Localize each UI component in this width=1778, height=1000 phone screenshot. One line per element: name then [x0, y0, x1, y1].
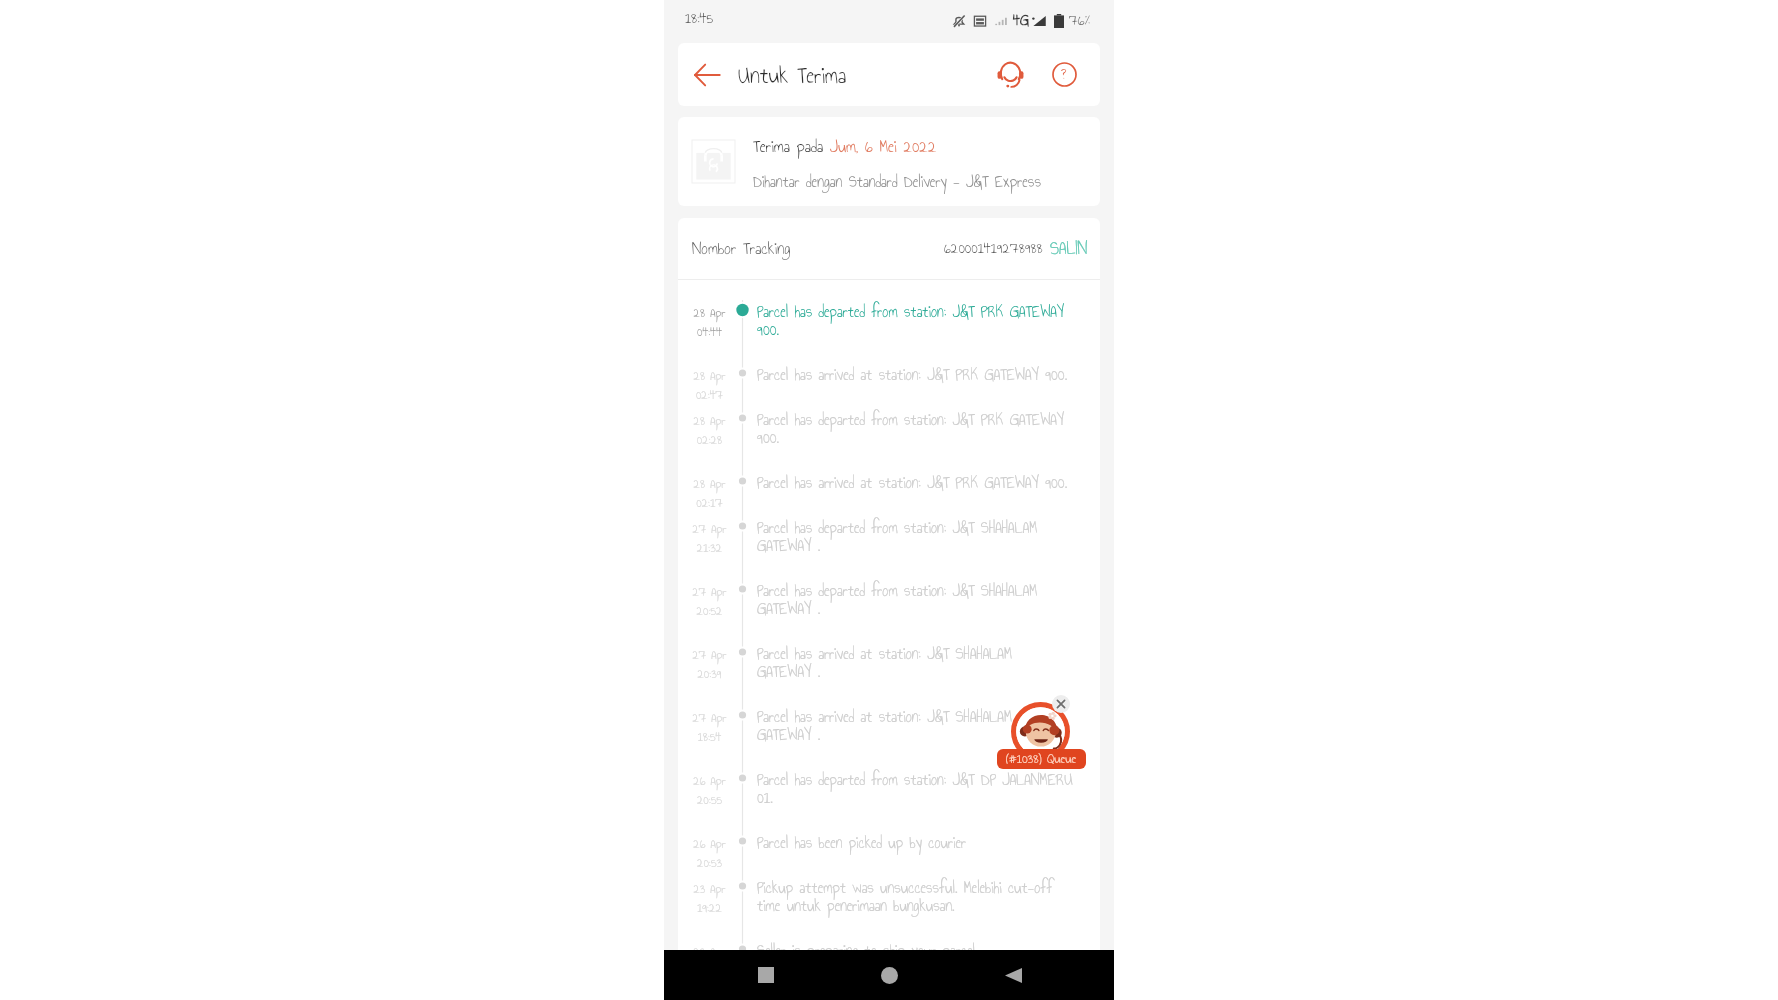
staticText: 19:22 — [683, 898, 736, 917]
staticText: 27 Apr — [683, 708, 736, 727]
staticText: Parcel has arrived at station: J&T SHAHA… — [757, 642, 1079, 684]
button[interactable]: Back — [678, 43, 736, 106]
staticText: 02:47 — [683, 385, 736, 404]
staticText: Pickup attempt was unsuccessful. Melebih… — [757, 876, 1079, 918]
button[interactable]: SALIN — [1050, 235, 1088, 262]
staticText: (#1038) Queue — [1006, 749, 1077, 769]
staticText: 28 Apr — [683, 366, 736, 385]
staticText: Seller is preparing to ship your parcel — [757, 939, 975, 963]
staticText: 27 Apr — [683, 645, 736, 664]
staticText: Nombor Tracking — [692, 236, 791, 262]
staticText: 02:28 — [683, 430, 736, 449]
staticText: Parcel has departed from station: J&T SH… — [757, 516, 1079, 558]
button[interactable]: Close chat widget — [1052, 695, 1070, 713]
staticText: 27 Apr — [683, 519, 736, 538]
button[interactable]: Back — [991, 953, 1035, 997]
staticText: Parcel has arrived at station: J&T SHAHA… — [757, 705, 1079, 747]
staticText: 4G — [1013, 9, 1029, 32]
button[interactable]: Recent apps — [744, 953, 788, 997]
staticText: 26 Apr — [683, 834, 736, 853]
staticText: 04:44 — [683, 322, 736, 341]
staticText: 28 Apr — [683, 411, 736, 430]
staticText: 76% — [1069, 9, 1091, 32]
staticText: 20:55 — [683, 790, 736, 809]
button[interactable]: Help — [1040, 43, 1088, 106]
staticText: 23 Apr — [683, 942, 736, 961]
button[interactable]: (#1038) Queue — [997, 749, 1086, 769]
staticText: Parcel has arrived at station: J&T PRK G… — [757, 363, 1068, 387]
staticText: 18:54 — [683, 727, 736, 746]
button[interactable]: Open chat support — [1011, 702, 1070, 761]
staticText: 26 Apr — [683, 771, 736, 790]
staticText: Parcel has arrived at station: J&T PRK G… — [757, 471, 1068, 495]
staticText: Dihantar dengan Standard Delivery - J&T … — [753, 170, 1041, 194]
staticText: ? — [1061, 62, 1067, 86]
staticText: Parcel has been picked up by courier — [757, 831, 966, 855]
staticText: 20:53 — [683, 853, 736, 872]
staticText: 18:45 — [685, 7, 714, 30]
staticText: SALIN — [1050, 235, 1088, 262]
staticText: 02:17 — [683, 493, 736, 512]
staticText: Parcel has departed from station: J&T DP… — [757, 768, 1079, 810]
staticText: Parcel has departed from station: J&T PR… — [757, 300, 1079, 342]
staticText: Parcel has departed from station: J&T PR… — [757, 408, 1079, 450]
staticText: 21:32 — [683, 538, 736, 557]
staticText: 27 Apr — [683, 582, 736, 601]
button[interactable]: Customer service chat — [981, 43, 1040, 106]
staticText: 28 Apr — [683, 474, 736, 493]
staticText: 23 Apr — [683, 879, 736, 898]
staticText: 20:52 — [683, 601, 736, 620]
staticText: 20:39 — [683, 664, 736, 683]
staticText: Untuk Terima — [738, 58, 847, 92]
staticText: Parcel has departed from station: J&T SH… — [757, 579, 1079, 621]
staticText: Terima pada Jum, 6 Mei 2022 — [753, 133, 937, 159]
staticText: 28 Apr — [683, 303, 736, 322]
staticText: 620001419278988 — [944, 237, 1043, 260]
button[interactable]: Home — [867, 953, 911, 997]
